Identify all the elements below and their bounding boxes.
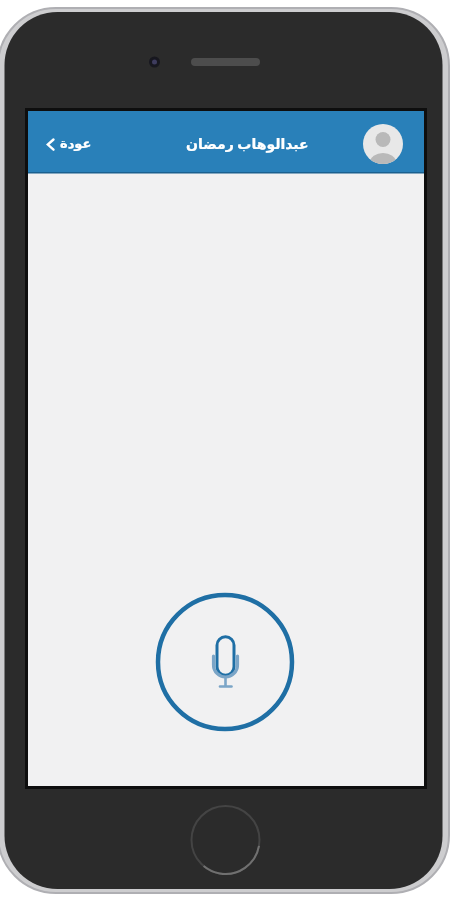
button[interactable] [153, 590, 297, 734]
button[interactable]: عودة [36, 126, 102, 162]
staticText: عودة [60, 136, 92, 151]
staticText: عبدالوهاب رمضان [186, 134, 309, 153]
button[interactable] [363, 124, 403, 164]
